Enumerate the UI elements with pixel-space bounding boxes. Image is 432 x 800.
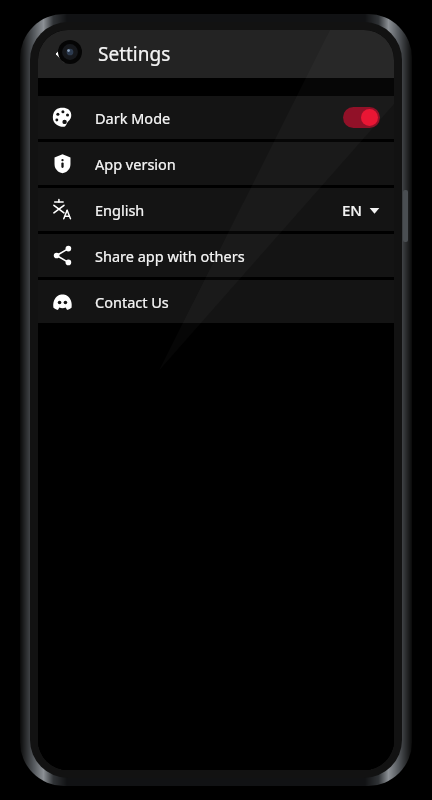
button[interactable]: App version <box>38 142 394 185</box>
staticText: Settings <box>98 41 171 67</box>
button[interactable]: Contact Us <box>38 280 394 323</box>
staticText: Contact Us <box>95 292 169 312</box>
staticText: EN <box>342 200 362 220</box>
button[interactable]: Dark Mode <box>38 96 394 139</box>
button[interactable]: Share app with others <box>38 234 394 277</box>
button[interactable]: Dark Mode toggle <box>343 107 380 128</box>
button[interactable]: English <box>38 188 394 231</box>
staticText: Dark Mode <box>95 108 171 128</box>
staticText: App version <box>95 154 176 174</box>
staticText: Share app with others <box>95 246 245 266</box>
staticText: English <box>95 200 145 220</box>
button[interactable]: Back <box>44 32 88 76</box>
